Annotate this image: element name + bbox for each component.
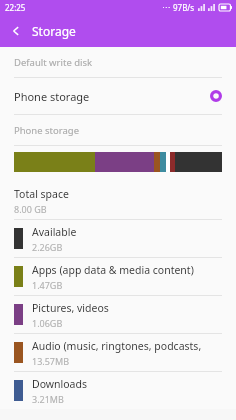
staticText: Default write disk — [14, 56, 93, 69]
staticText: 1.06GB — [32, 317, 63, 329]
button[interactable]: Downloads — [0, 372, 236, 409]
staticText: Storage — [32, 23, 76, 39]
staticText: 22:25 — [5, 2, 26, 13]
staticText: ⋯ — [162, 3, 170, 12]
staticText: 13.57MB — [32, 355, 70, 367]
staticText: 3.21MB — [32, 393, 64, 405]
button[interactable]: Apps (app data & media content) — [0, 258, 236, 295]
staticText: Total space — [14, 187, 69, 201]
button[interactable]: Total space — [0, 182, 236, 219]
staticText: Available — [32, 225, 77, 239]
staticText: Phone storage — [14, 89, 90, 104]
staticText: Phone storage — [14, 124, 80, 137]
button[interactable]: Pictures, videos — [0, 296, 236, 333]
staticText: Downloads — [32, 377, 87, 391]
button[interactable]: Phone storage — [0, 78, 236, 114]
staticText: 1.47GB — [32, 279, 63, 291]
button[interactable]: Available — [0, 220, 236, 257]
staticText: 2.26GB — [32, 241, 63, 253]
button[interactable]: Audio (music, ringtones, podcasts, etc.) — [0, 334, 236, 371]
staticText: Audio (music, ringtones, podcasts, etc.) — [32, 339, 222, 353]
staticText: Apps (app data & media content) — [32, 263, 194, 277]
button[interactable]: Back — [0, 15, 32, 47]
staticText: 97B/s — [173, 2, 195, 13]
staticText: Pictures, videos — [32, 301, 109, 315]
staticText: 8.00 GB — [14, 203, 47, 215]
